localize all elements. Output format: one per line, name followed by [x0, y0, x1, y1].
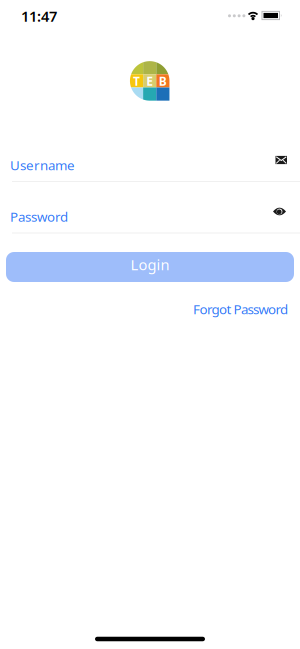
button[interactable]: Password: [10, 201, 273, 231]
staticText: Login: [130, 255, 169, 274]
staticText: Forgot Password: [193, 300, 288, 318]
staticText: B: [159, 73, 167, 89]
staticText: T: [133, 73, 140, 89]
button[interactable]: Forgot Password: [193, 300, 288, 318]
staticText: Password: [10, 208, 68, 225]
staticText: E: [146, 73, 153, 89]
button[interactable]: Show password: [273, 212, 286, 221]
button[interactable]: Username: [0, 150, 300, 180]
button[interactable]: Login: [6, 252, 294, 282]
staticText: Username: [10, 156, 75, 174]
staticText: 11:47: [21, 6, 57, 26]
